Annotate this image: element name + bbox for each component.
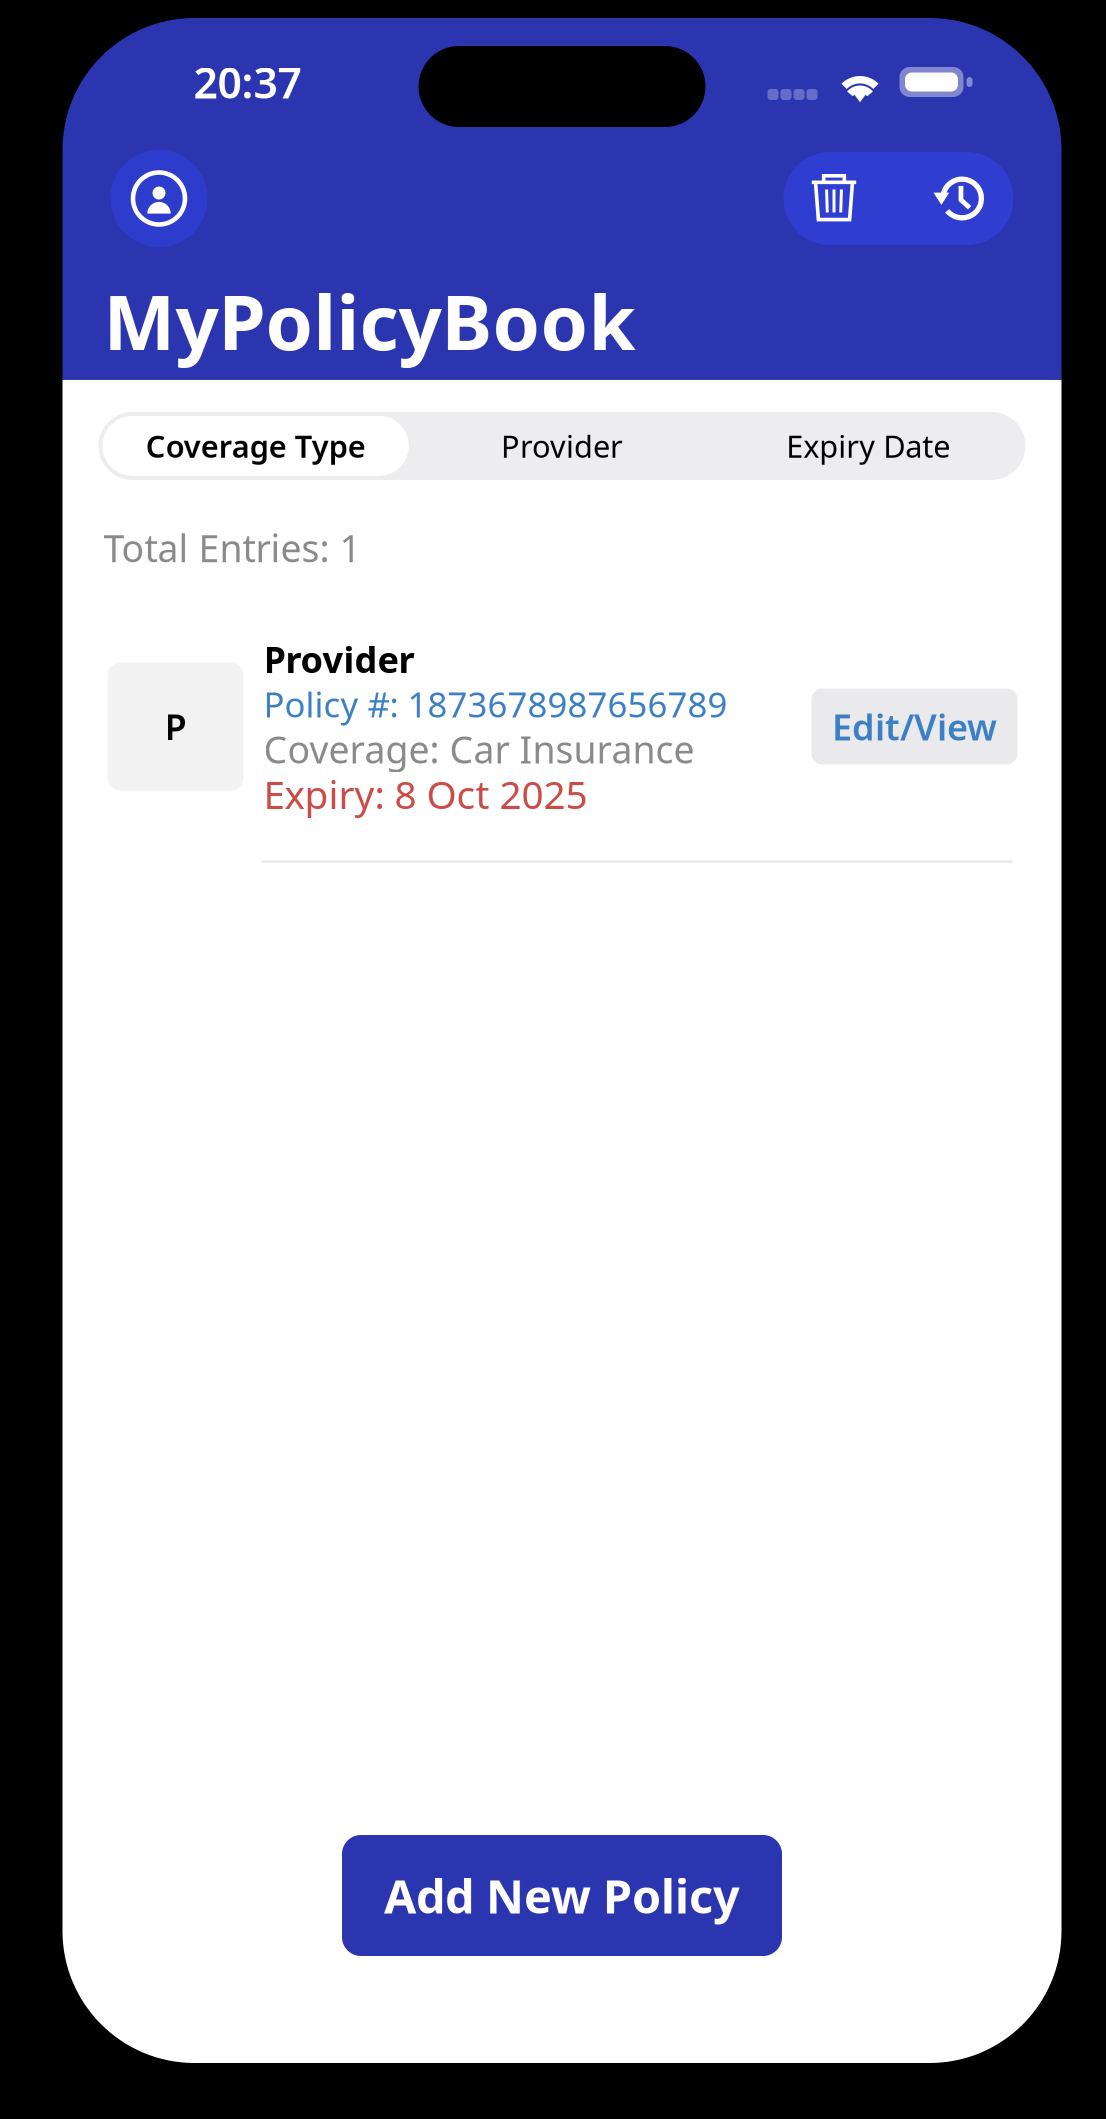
staticText: Total Entries: 1 bbox=[103, 523, 360, 572]
button[interactable]: Provider bbox=[409, 416, 715, 476]
staticText: Expiry: 8 Oct 2025 bbox=[263, 768, 587, 820]
button[interactable]: Edit/View bbox=[811, 688, 1017, 764]
staticText: Add New Policy bbox=[384, 1864, 740, 1926]
button[interactable]: Delete bbox=[783, 152, 896, 245]
staticText: Policy #: 1873678987656789 bbox=[263, 681, 727, 727]
button[interactable]: Expiry Date bbox=[715, 416, 1021, 476]
staticText: MyPolicyBook bbox=[103, 270, 635, 371]
staticText: 20:37 bbox=[193, 54, 301, 110]
button[interactable]: Add New Policy bbox=[342, 1835, 782, 1956]
staticText: Coverage: Car Insurance bbox=[263, 724, 694, 774]
staticText: P bbox=[164, 703, 186, 750]
button[interactable]: Coverage Type bbox=[102, 416, 409, 476]
button[interactable]: History bbox=[896, 152, 1013, 245]
staticText: Provider bbox=[501, 426, 623, 466]
staticText: Expiry Date bbox=[786, 426, 950, 466]
staticText: Edit/View bbox=[832, 703, 997, 750]
staticText: Provider bbox=[263, 635, 414, 683]
button[interactable]: Profile bbox=[110, 150, 207, 247]
staticText: Coverage Type bbox=[146, 426, 366, 466]
